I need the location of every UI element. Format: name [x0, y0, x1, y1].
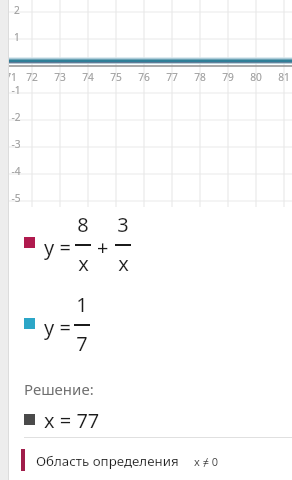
staticText: x [118, 250, 129, 277]
staticText: 3 [117, 211, 129, 238]
staticText: 1 [14, 30, 20, 44]
staticText: 78 [194, 70, 206, 84]
staticText: 1 [76, 291, 88, 318]
staticText: 2 [14, 3, 20, 17]
staticText: y = [44, 234, 77, 261]
staticText: Решение: [24, 379, 94, 399]
staticText: 76 [138, 70, 150, 84]
staticText: y = [44, 314, 77, 341]
staticText: 74 [82, 70, 94, 84]
staticText: x [78, 250, 89, 277]
staticText: Область определения [36, 452, 179, 470]
staticText: -1 [11, 83, 21, 97]
staticText: x ≠ 0 [194, 454, 219, 469]
staticText: -5 [11, 191, 21, 205]
staticText: 81 [278, 70, 290, 84]
staticText: 73 [54, 70, 66, 84]
button[interactable]: Область определения [21, 446, 281, 474]
staticText: -3 [11, 137, 21, 151]
staticText: + [97, 234, 109, 261]
staticText: 75 [110, 70, 122, 84]
staticText: 77 [166, 70, 178, 84]
staticText: 72 [26, 70, 38, 84]
staticText: -4 [11, 164, 21, 178]
staticText: 8 [77, 211, 89, 238]
staticText: 7 [76, 330, 88, 357]
staticText: x = 77 [44, 407, 100, 434]
staticText: -2 [11, 110, 21, 124]
staticText: 71 [5, 70, 17, 84]
staticText: 79 [222, 70, 234, 84]
staticText: 80 [250, 70, 262, 84]
